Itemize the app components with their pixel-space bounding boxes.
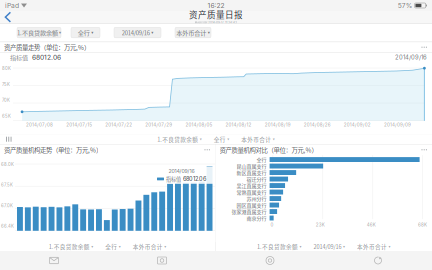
staticText: ▾ [208,30,210,35]
staticText: 资产质量机构走势（单位：万元,%） [4,145,102,154]
staticText: 1.不良贷款余额 [49,242,90,250]
button[interactable]: Back [0,11,16,23]
button[interactable]: 全行 [103,243,123,250]
button[interactable]: 全行 [212,136,231,143]
button[interactable]: 1.不良贷款余额 [255,243,303,250]
staticText: ▾ [164,244,166,249]
staticText: 2014/09/16 [395,54,427,61]
staticText: 本外币合计 [357,242,387,250]
button[interactable]: Messages [0,251,108,269]
staticText: 昆山直属支行 [237,162,267,170]
staticText: 57% [398,1,413,10]
staticText: ▾ [273,137,275,142]
staticText: 本外币合计 [241,135,271,143]
staticText: ▾ [343,244,345,249]
staticText: 68.0K [1,162,14,167]
staticText: ▾ [91,244,93,249]
button[interactable]: 本外币合计 [355,243,392,250]
button[interactable]: 2014/09/16 [114,27,161,38]
staticText: 2014/09/09 [384,122,411,128]
staticText: 本外币合计 [176,28,206,37]
staticText: 2014/09/16 [122,28,150,37]
button[interactable]: 1.不良贷款余额 [17,27,61,38]
staticText: 本外币合计 [133,242,163,250]
staticText: 全行 [214,135,226,143]
staticText: 67.0K [1,203,13,208]
staticText: 苏州分行 [247,195,267,202]
staticText: 65K [2,114,11,119]
button[interactable]: Snapshot [108,251,216,269]
button[interactable]: 本外币合计 [175,27,211,38]
staticText: ▾ [227,137,229,142]
staticText: 指标值 [166,175,181,183]
staticText: 宿迁分行 [247,175,267,183]
staticText: 南京分行 [247,214,267,222]
staticText: ▾ [91,30,93,35]
staticText: 2014/08/12 [225,122,251,128]
staticText: 吴江直属支行 [237,182,267,189]
staticText: 张家港直属支行 [232,208,267,215]
staticText: 新区直属支行 [237,169,267,176]
staticText: 2014/07/08 [26,122,53,128]
staticText: 2014/08/26 [304,122,331,128]
staticText: 2014/08/19 [265,122,291,128]
button[interactable]: 本外币合计 [131,243,168,250]
staticText: 68012.06 [32,53,61,61]
staticText: 66.4K [1,224,14,229]
staticText: 1.不良贷款余额 [157,135,198,143]
button[interactable]: 2014/09/16 [311,243,347,250]
staticText: 1.不良贷款余额 [17,28,57,37]
staticText: 46K [367,222,376,228]
staticText: 1.不良贷款余额 [257,242,298,250]
button[interactable]: More options [418,44,430,51]
button[interactable]: 1.不良贷款余额 [47,243,95,250]
staticText: iPad [5,1,19,10]
staticText: ▾ [388,244,390,249]
staticText: 2014/07/15 [66,122,92,128]
staticText: 0 [271,222,274,228]
staticText: 16:22 [207,1,224,10]
staticText: 2014/09/16 [313,242,341,250]
staticText: 2014/08/05 [185,122,212,128]
staticText: 数据日期:2014-09-17 11:34:43 [195,21,237,25]
button[interactable]: 本外币合计 [239,136,277,143]
staticText: 资产质量走势（单位：万元,%） [4,43,90,52]
staticText: 园区直属支行 [237,201,267,209]
staticText: ▾ [151,30,153,35]
staticText: 75K [2,82,10,87]
staticText: 全行 [257,156,267,163]
staticText: 2014/07/29 [145,122,172,128]
staticText: 全行 [105,242,117,250]
staticText: ▾ [119,244,121,249]
staticText: 68012.06 [183,176,206,182]
button[interactable]: 1.不良贷款余额 [155,136,204,143]
staticText: 2014/09/02 [344,122,371,128]
button[interactable]: More options [201,146,213,153]
staticText: 68K [418,222,427,228]
button[interactable]: Refresh [324,251,432,269]
staticText: 指标值 [10,53,28,62]
button[interactable]: Dashboard [216,251,324,269]
staticText: 资产质量机构对比（单位：万元,%） [220,145,318,154]
staticText: ▾ [200,137,202,142]
staticText: 67.5K [1,182,13,188]
staticText: ▾ [59,30,61,35]
staticText: 70K [2,98,10,103]
staticText: 全行 [78,28,90,37]
staticText: 23K [316,222,325,228]
button[interactable]: More options [418,146,430,153]
button[interactable]: 全行 [71,27,100,38]
staticText: 资产质量日报 [189,8,243,21]
staticText: 2014/09/16 [168,168,194,174]
staticText: ▾ [299,244,301,249]
staticText: 2014/07/22 [105,122,132,128]
staticText: 80K [2,66,11,71]
staticText: 常熟直属支行 [237,188,267,196]
